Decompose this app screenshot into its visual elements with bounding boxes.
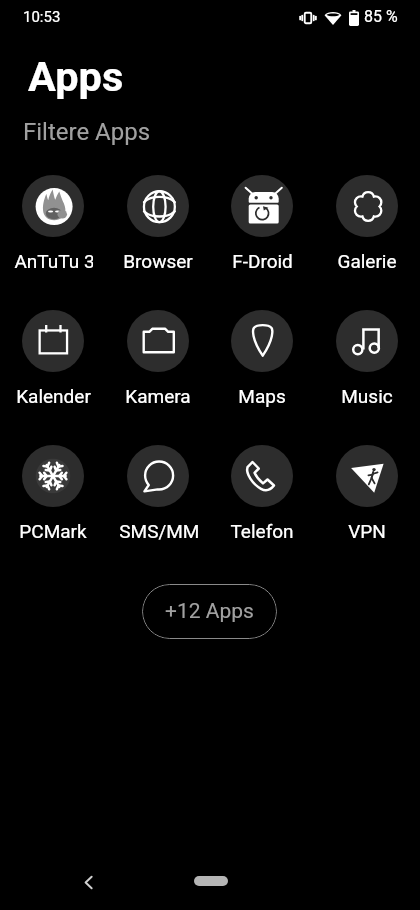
staticText: Galerie — [337, 250, 397, 272]
button[interactable]: F-Droid — [210, 169, 314, 272]
button[interactable]: SMS/MMS — [106, 439, 210, 542]
staticText: Telefon — [230, 520, 294, 542]
staticText: Kamera — [125, 385, 191, 407]
button[interactable]: +12 Apps — [142, 584, 277, 639]
staticText: Maps — [238, 385, 286, 407]
staticText: Kalender — [16, 385, 91, 407]
staticText: 10:53 — [23, 8, 61, 26]
button[interactable]: Galerie — [315, 169, 419, 272]
staticText: AnTuTu 3 — [14, 250, 93, 272]
staticText: Browser — [123, 250, 193, 272]
staticText: SMS/MMS — [119, 520, 198, 542]
button[interactable]: Music — [315, 304, 419, 407]
staticText: 85 % — [364, 7, 398, 26]
button[interactable]: Kamera — [106, 304, 210, 407]
staticText: +12 Apps — [165, 599, 254, 624]
staticText: Music — [341, 385, 393, 407]
button[interactable]: PCMark — [1, 439, 105, 542]
staticText: Apps — [28, 52, 124, 101]
staticText: Filtere Apps — [23, 118, 151, 146]
button[interactable]: Back — [68, 862, 108, 902]
button[interactable]: VPN — [315, 439, 419, 542]
staticText: F-Droid — [232, 250, 293, 272]
button[interactable]: Browser — [106, 169, 210, 272]
button[interactable]: Maps — [210, 304, 314, 407]
button[interactable]: Home — [194, 876, 228, 886]
staticText: VPN — [348, 520, 386, 542]
button[interactable]: Kalender — [1, 304, 105, 407]
button[interactable]: AnTuTu 3 — [1, 169, 105, 272]
button[interactable]: Telefon — [210, 439, 314, 542]
staticText: PCMark — [19, 520, 87, 542]
